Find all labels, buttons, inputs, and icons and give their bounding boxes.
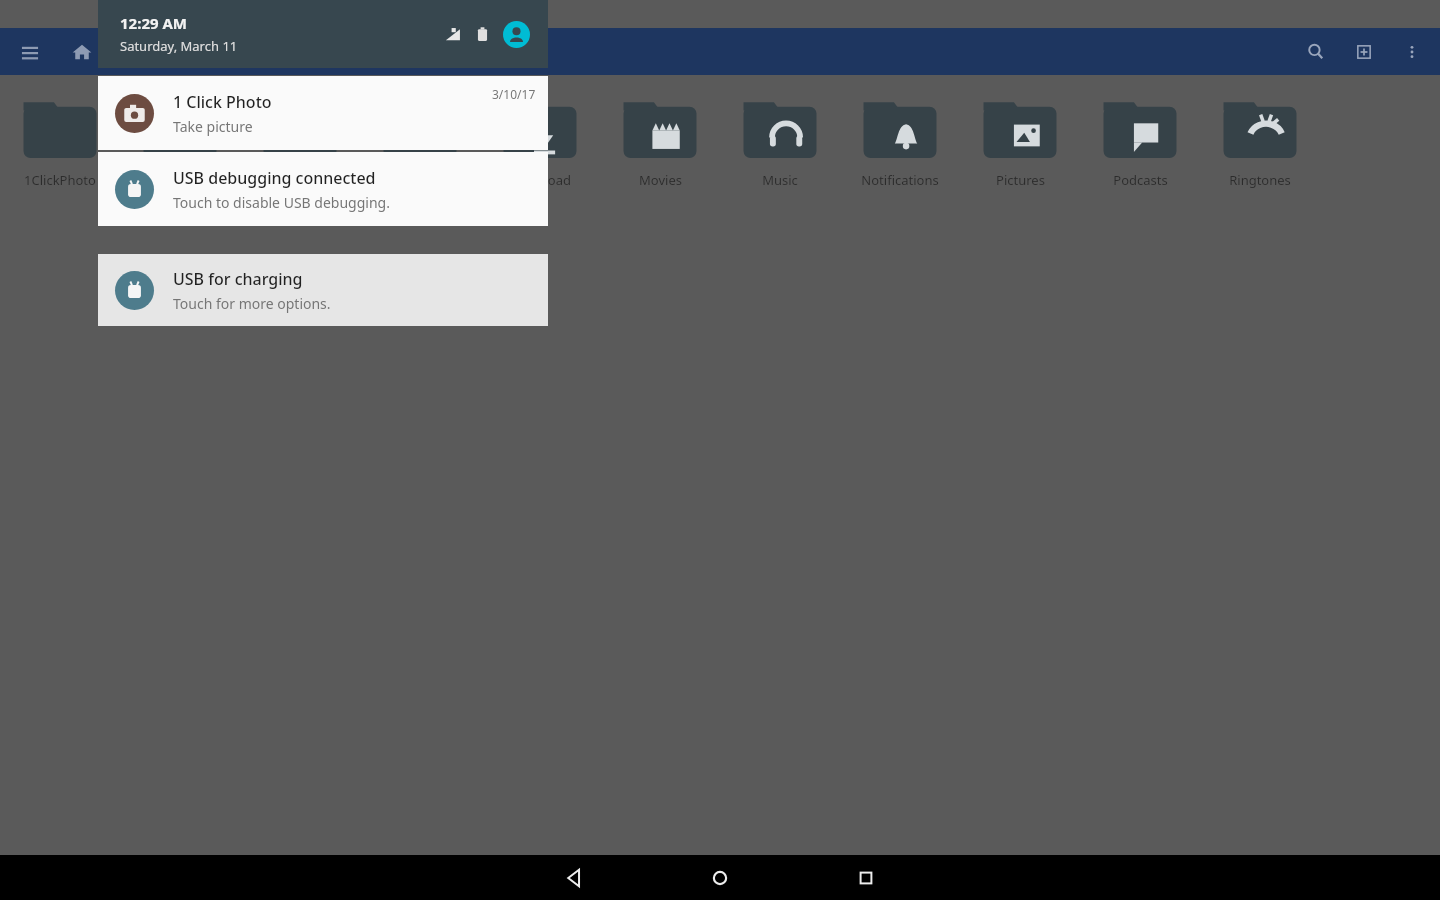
button[interactable]: Home [60, 30, 104, 74]
button[interactable]: Home [675, 855, 765, 900]
staticText: 1ClickPhoto [24, 171, 96, 189]
button[interactable]: Android [240, 99, 360, 189]
staticText: USB debugging connected [173, 167, 376, 189]
button[interactable]: Open navigation drawer [8, 30, 52, 74]
staticText: Saturday, March 11 [120, 37, 238, 55]
button[interactable]: Movies [600, 99, 720, 189]
button[interactable]: More options [1388, 28, 1436, 75]
staticText: 3/10/17 [492, 86, 536, 102]
button[interactable]: Back [529, 855, 619, 900]
staticText: Ringtones [1229, 171, 1291, 189]
button[interactable]: Pictures [960, 99, 1080, 189]
staticText: Touch to disable USB debugging. [173, 193, 390, 212]
staticText: Android [276, 171, 325, 189]
staticText: 1 Click Photo [173, 91, 272, 113]
button[interactable]: USB for charging [98, 254, 548, 326]
button[interactable]: DCIM [360, 99, 480, 189]
staticText: Download [509, 171, 571, 189]
staticText: USB for charging [173, 268, 303, 290]
staticText: Pictures [996, 171, 1045, 189]
button[interactable]: Podcasts [1080, 99, 1200, 189]
staticText: Alarms [159, 171, 202, 189]
button[interactable]: Recent apps [821, 855, 911, 900]
button[interactable]: Ringtones [1200, 99, 1320, 189]
button[interactable]: User profile [503, 21, 530, 48]
button[interactable]: Alarms [120, 99, 240, 189]
button[interactable]: New folder [1340, 28, 1388, 75]
button[interactable]: Music [720, 99, 840, 189]
staticText: Touch for more options. [173, 294, 331, 313]
staticText: Music [762, 171, 798, 189]
button[interactable]: 12:29 AM [98, 0, 548, 68]
button[interactable]: 1 Click Photo [98, 76, 548, 150]
button[interactable]: Search [1292, 28, 1340, 75]
staticText: 12:29 AM [120, 13, 187, 33]
staticText: Take picture [173, 117, 253, 136]
button[interactable]: 1ClickPhoto [0, 99, 120, 189]
button[interactable]: USB debugging connected [98, 152, 548, 226]
staticText: Notifications [861, 171, 939, 189]
staticText: Podcasts [1113, 171, 1168, 189]
staticText: Movies [639, 171, 682, 189]
button[interactable]: Download [480, 99, 600, 189]
button[interactable]: Notifications [840, 99, 960, 189]
